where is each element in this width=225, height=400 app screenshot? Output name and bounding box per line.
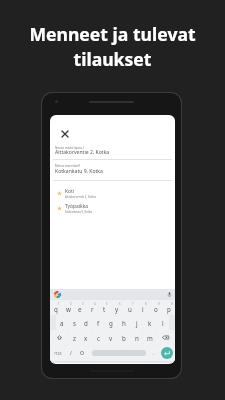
button[interactable]: m [143,330,156,345]
button[interactable]: Koti [50,186,175,200]
staticText: s [73,319,76,327]
staticText: g [109,319,113,327]
staticText: 5 [106,302,108,306]
staticText: Aittakorventie 2, Kotka [65,195,96,199]
staticText: w [66,305,71,313]
button[interactable]: Space [88,345,149,361]
other: Shift [57,335,62,340]
staticText: q [54,305,58,313]
staticText: p [167,305,171,313]
staticText: f [97,319,100,327]
staticText: k [148,319,152,327]
button[interactable]: l [156,315,169,330]
button[interactable]: 9 [149,300,162,315]
staticText: y [115,305,119,313]
button[interactable]: ?123 [50,345,66,361]
button[interactable]: b [117,330,130,345]
staticText: n [135,334,139,342]
button[interactable]: Close [57,126,72,141]
staticText: Kotkankatu 9, Kotka [55,168,103,175]
staticText: h [122,319,126,327]
staticText: z [73,334,76,342]
staticText: / [70,350,72,357]
button[interactable]: h [117,315,130,330]
button[interactable]: n [130,330,143,345]
button[interactable]: s [68,315,80,330]
staticText: 1 [58,302,60,306]
button[interactable]: Työpaikka [50,201,175,215]
button[interactable]: f [92,315,104,330]
button[interactable]: j [130,315,143,330]
button[interactable]: 2 [62,300,74,315]
staticText: o [154,305,158,313]
staticText: t [103,305,106,313]
staticText: 2 [70,302,72,306]
button[interactable]: Enter [158,345,175,361]
staticText: Aittakorventie 2, Kotka [55,149,110,156]
button[interactable]: a [56,315,68,330]
staticText: 9 [158,302,160,306]
staticText: l [162,319,164,327]
button[interactable]: Backspace [156,330,175,345]
button[interactable]: 0 [162,300,175,315]
staticText: x [84,334,88,342]
staticText: c [97,334,100,342]
button[interactable]: . [149,345,158,361]
other: Voice input [167,292,172,297]
button[interactable]: v [104,330,117,345]
other: Backspace [162,335,169,340]
staticText: Työpaikka [65,203,89,210]
button[interactable]: d [80,315,92,330]
staticText: Menneet ja tulevat tilaukset [29,22,196,71]
staticText: d [84,319,88,327]
staticText: . [153,350,155,357]
button[interactable]: Emoji [76,345,88,361]
button[interactable]: z [68,330,80,345]
button[interactable]: 6 [110,300,123,315]
staticText: ?123 [54,351,62,356]
staticText: 8 [145,302,147,306]
staticText: j [136,319,138,327]
button[interactable]: 7 [123,300,136,315]
button[interactable]: k [143,315,156,330]
staticText: Koti [65,188,75,195]
staticText: v [109,334,113,342]
staticText: 0 [171,302,173,306]
button[interactable]: 3 [74,300,86,315]
staticText: 6 [119,302,121,306]
staticText: 4 [94,302,96,306]
button[interactable]: c [92,330,104,345]
button[interactable]: 1 [50,300,62,315]
staticText: a [60,319,64,327]
button[interactable]: / [66,345,76,361]
staticText: u [128,305,132,313]
staticText: i [142,305,144,313]
button[interactable]: x [80,330,92,345]
staticText: 7 [132,302,134,306]
staticText: b [122,334,126,342]
staticText: Minne mennään? [55,164,81,168]
button[interactable]: 4 [86,300,98,315]
staticText: e [78,305,82,313]
button[interactable]: Shift [50,330,68,345]
button[interactable]: g [104,315,117,330]
button[interactable]: 5 [98,300,110,315]
staticText: 3 [82,302,84,306]
button[interactable]: 8 [136,300,149,315]
staticText: r [91,305,94,313]
staticText: Nouto mistä (ajoss.) [55,146,84,150]
staticText: Kotkankatu 9, Kotka [65,210,93,214]
staticText: m [147,334,153,342]
